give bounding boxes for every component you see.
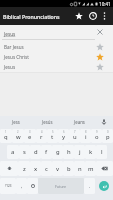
staticText: w [16, 133, 21, 141]
button[interactable]: 3 [24, 129, 36, 143]
button[interactable]: Shift [0, 161, 18, 176]
staticText: , [21, 183, 23, 189]
staticText: m [88, 165, 94, 173]
staticText: Jesus [4, 64, 94, 70]
button[interactable]: n [74, 161, 85, 176]
staticText: ?123 [5, 184, 12, 188]
button[interactable]: 0 [102, 129, 113, 143]
staticText: a [11, 148, 15, 156]
button[interactable]: c [41, 161, 52, 176]
button[interactable]: Jess [0, 116, 31, 128]
staticText: t [51, 133, 54, 141]
button[interactable]: Backspace [96, 161, 113, 176]
button[interactable]: a [7, 145, 19, 159]
button[interactable]: 9 [91, 129, 102, 143]
button[interactable]: Favorites [72, 7, 86, 25]
button[interactable]: 1 [0, 129, 12, 143]
button[interactable]: Favorite Bar Jesus [94, 42, 106, 52]
button[interactable]: Bar Jesus [0, 42, 113, 52]
staticText: 0 [107, 130, 109, 134]
button[interactable]: k [85, 145, 96, 159]
button[interactable]: Jesus [0, 62, 113, 72]
button[interactable]: 4 [36, 129, 47, 143]
button[interactable]: 6 [58, 129, 69, 143]
staticText: 9 [96, 130, 98, 134]
staticText: q [4, 133, 8, 141]
staticText: s [23, 148, 26, 156]
staticText: 10:41 [99, 1, 111, 7]
button[interactable]: History [86, 7, 99, 25]
staticText: v [56, 165, 60, 173]
staticText: 8 [85, 130, 87, 134]
staticText: h [67, 148, 71, 156]
staticText: 4 [41, 130, 43, 134]
button[interactable]: d [30, 145, 41, 159]
staticText: y [62, 133, 66, 141]
button[interactable]: h [63, 145, 74, 159]
staticText: Bar Jesus [4, 44, 94, 50]
button[interactable]: z [18, 161, 30, 176]
staticText: o [95, 133, 99, 141]
button[interactable]: Jesus Christ [0, 52, 113, 62]
staticText: p [106, 133, 110, 141]
staticText: Jess [12, 119, 20, 125]
button[interactable]: b [63, 161, 74, 176]
button[interactable]: Clear search [94, 25, 106, 40]
button[interactable]: . [84, 178, 95, 194]
staticText: 6 [63, 130, 65, 134]
staticText: Biblical Pronunciations [3, 13, 60, 20]
button[interactable]: 8 [80, 129, 91, 143]
staticText: 7 [74, 130, 76, 134]
button[interactable]: Voice input [95, 116, 113, 128]
staticText: u [73, 133, 77, 141]
staticText: 1 [5, 130, 7, 134]
staticText: d [34, 148, 38, 156]
button[interactable]: j [74, 145, 85, 159]
staticText: l [101, 148, 103, 156]
staticText: b [67, 165, 71, 173]
staticText: f [45, 148, 48, 156]
staticText: k [89, 148, 93, 156]
button[interactable]: ?123 [0, 178, 16, 194]
staticText: e [28, 133, 32, 141]
staticText: 5 [52, 130, 54, 134]
button[interactable]: Emoji [27, 178, 38, 194]
button[interactable]: x [30, 161, 41, 176]
staticText: Jesús [42, 119, 53, 125]
button[interactable]: 5 [47, 129, 58, 143]
staticText: x [34, 165, 38, 173]
staticText: j [79, 148, 81, 156]
staticText: 3 [29, 130, 31, 134]
button[interactable]: v [52, 161, 63, 176]
button[interactable]: 7 [69, 129, 80, 143]
button[interactable]: Jeans [63, 116, 95, 128]
staticText: Jesus [4, 31, 16, 37]
staticText: r [40, 133, 43, 141]
button[interactable]: m [85, 161, 96, 176]
staticText: . [89, 183, 91, 189]
button[interactable]: f [41, 145, 52, 159]
staticText: g [56, 148, 60, 156]
staticText: 2 [17, 130, 19, 134]
staticText: c [45, 165, 48, 173]
button[interactable]: Space [38, 178, 84, 194]
button[interactable]: Favorite Jesus [94, 62, 106, 72]
button[interactable]: g [52, 145, 63, 159]
staticText: Jeans [74, 119, 85, 125]
button[interactable]: Jesús [31, 116, 63, 128]
staticText: z [23, 165, 26, 173]
staticText: i [85, 133, 87, 141]
button[interactable]: , [16, 178, 27, 194]
button[interactable]: Favorite Jesus Christ [94, 52, 106, 62]
button[interactable]: More options [99, 7, 110, 25]
button[interactable]: s [19, 145, 30, 159]
staticText: Future [55, 184, 67, 189]
button[interactable]: 2 [12, 129, 24, 143]
staticText: Jesus Christ [4, 54, 94, 60]
button[interactable]: l [96, 145, 107, 159]
button[interactable] [0, 25, 113, 42]
button[interactable]: Enter [95, 177, 113, 195]
staticText: n [78, 165, 82, 173]
